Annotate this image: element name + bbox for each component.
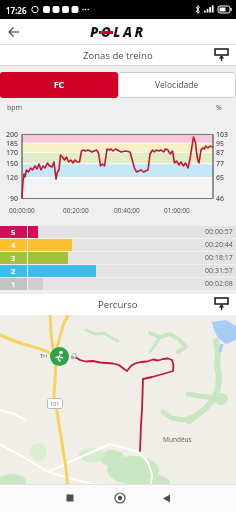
staticText: 5 [11, 227, 16, 237]
staticText: 150 [6, 159, 19, 168]
button[interactable] [145, 484, 188, 512]
staticText: 87 [216, 148, 225, 157]
staticText: 2 [11, 266, 16, 276]
staticText: POLAR [90, 23, 146, 41]
staticText: 95 [216, 139, 225, 148]
button[interactable] [48, 484, 91, 512]
staticText: 101 [50, 400, 60, 407]
staticText: 126 [6, 173, 19, 182]
staticText: 103 [216, 130, 229, 139]
staticText: Tri [40, 352, 48, 360]
staticText: 00:40:00 [114, 206, 140, 215]
button[interactable]: Velocidade [118, 72, 236, 98]
staticText: 4 [11, 240, 16, 250]
staticText: bpm [7, 103, 23, 113]
staticText: 17:26 [6, 5, 27, 16]
staticText: Velocidade [155, 79, 199, 91]
staticText: o [71, 353, 75, 361]
staticText: 3 [11, 253, 16, 263]
staticText: 00:18:17 [205, 253, 233, 263]
staticText: 90 [10, 194, 19, 203]
staticText: 65 [216, 173, 225, 182]
staticText: 00:00:00 [9, 206, 35, 215]
staticText: 01:00:00 [164, 206, 190, 215]
staticText: 00:20:00 [63, 206, 89, 215]
staticText: 46 [216, 194, 225, 203]
staticText: 00:31:57 [205, 266, 233, 276]
staticText: FC [54, 79, 64, 91]
button[interactable] [4, 23, 24, 41]
button[interactable]: Percurso [0, 294, 236, 315]
staticText: 00:20:44 [205, 240, 233, 250]
staticText: Percurso [98, 298, 138, 311]
staticText: Mundéus [163, 435, 192, 444]
staticText: % [216, 103, 222, 113]
staticText: 00:02:08 [205, 279, 233, 289]
button[interactable]: Zonas de treino [0, 45, 236, 66]
staticText: 00:00:57 [205, 227, 233, 237]
staticText: 200 [6, 130, 19, 139]
staticText: Zonas de treino [83, 49, 153, 62]
staticText: 185 [6, 139, 19, 148]
staticText: 170 [6, 148, 19, 157]
button[interactable] [98, 484, 141, 512]
button[interactable]: FC [0, 72, 118, 98]
staticText: 77 [216, 159, 225, 168]
staticText: 1 [11, 279, 16, 289]
